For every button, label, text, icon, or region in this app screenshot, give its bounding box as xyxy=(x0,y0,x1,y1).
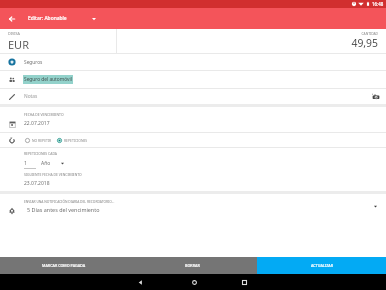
button[interactable]: NO REPETIR xyxy=(25,135,52,146)
button[interactable]: Notas xyxy=(0,89,386,104)
button[interactable]: Back xyxy=(132,274,148,290)
button[interactable]: CANTIDAD xyxy=(117,29,386,53)
button[interactable]: Seguros xyxy=(0,54,386,70)
button[interactable]: Home xyxy=(186,274,202,290)
staticText: Notas xyxy=(24,93,38,100)
staticText: REPETICIONES CADA xyxy=(24,151,57,156)
staticText: NO REPETIR xyxy=(32,138,52,143)
staticText: REPETICIONES xyxy=(64,138,88,143)
button[interactable]: Change reminder xyxy=(369,200,381,212)
button[interactable]: Recent apps xyxy=(236,274,252,290)
button[interactable]: Año xyxy=(41,160,64,167)
button[interactable]: Take photo xyxy=(369,90,383,104)
button[interactable]: Navigate up xyxy=(0,8,23,29)
staticText: ENVIAR UNA NOTIFICACIÓN DIARIA DEL RECOR… xyxy=(24,199,115,203)
staticText: 5 Días antes del vencimiento xyxy=(27,206,100,213)
staticText: Seguros xyxy=(24,59,43,66)
staticText: EUR xyxy=(8,37,29,52)
button[interactable]: REPETICIONES xyxy=(57,135,88,146)
staticText: FECHA DE VENCIMIENTO xyxy=(24,112,64,117)
button[interactable]: DIVISA xyxy=(0,29,116,53)
button[interactable]: ENVIAR UNA NOTIFICACIÓN DIARIA DEL RECOR… xyxy=(0,194,386,218)
staticText: BORRAR xyxy=(185,263,200,268)
button[interactable]: FECHA DE VENCIMIENTO xyxy=(0,107,386,132)
staticText: Seguro del automóvil xyxy=(24,76,72,83)
staticText: 1 xyxy=(24,160,27,167)
staticText: 23.07.2018 xyxy=(24,180,50,187)
staticText: 16:48 xyxy=(372,1,384,7)
staticText: CANTIDAD xyxy=(361,31,378,35)
staticText: 22.07.2017 xyxy=(24,120,50,127)
button[interactable]: More options xyxy=(88,13,100,25)
button[interactable]: 1 xyxy=(24,160,36,169)
button[interactable]: ACTUALIZAR xyxy=(257,257,386,274)
staticText: 49,95 xyxy=(351,36,378,50)
button[interactable]: Seguro del automóvil xyxy=(0,71,386,88)
staticText: MARCAR COMO PAGADA xyxy=(42,263,86,268)
staticText: DIVISA xyxy=(8,31,20,36)
staticText: ACTUALIZAR xyxy=(311,263,333,268)
staticText: Editar: Abonable xyxy=(28,15,67,22)
button[interactable]: MARCAR COMO PAGADA xyxy=(0,257,128,274)
staticText: SIGUIENTE FECHA DE VENCIMIENTO xyxy=(24,172,82,177)
staticText: Año xyxy=(41,160,51,167)
button[interactable]: BORRAR xyxy=(128,257,257,274)
